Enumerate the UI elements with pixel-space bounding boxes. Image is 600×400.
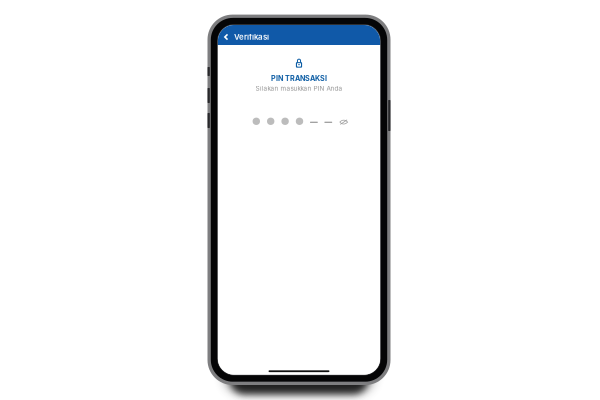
staticText: PIN TRANSAKSI bbox=[271, 74, 327, 83]
button[interactable]: Show PIN bbox=[335, 116, 352, 126]
button[interactable]: Verifikasi bbox=[218, 25, 275, 45]
staticText: Verifikasi bbox=[234, 32, 269, 42]
staticText: Silakan masukkan PIN Anda bbox=[255, 85, 342, 92]
